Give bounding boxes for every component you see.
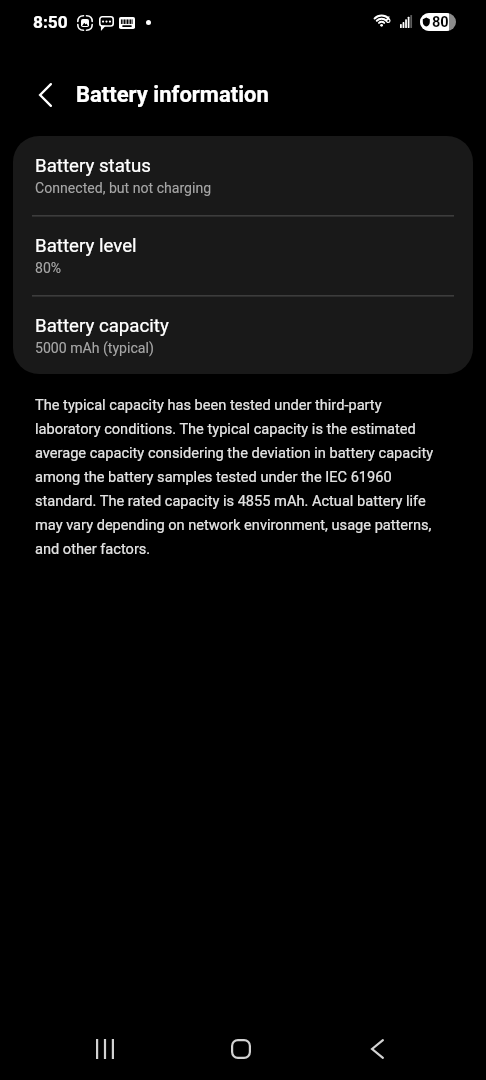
button[interactable]: Back [341,1018,413,1080]
staticText: Battery status [35,155,151,177]
button[interactable]: Battery level [13,216,473,296]
button[interactable]: Home [205,1018,277,1080]
staticText: Connected, but not charging [35,180,212,197]
button[interactable]: Recent apps [69,1018,141,1080]
staticText: Battery capacity [35,315,169,337]
button[interactable]: Battery status [13,136,473,216]
staticText: 8:50 [33,12,68,32]
staticText: Battery information [76,82,269,108]
staticText: The typical capacity has been tested und… [35,391,450,559]
staticText: 80% [35,260,62,277]
staticText: 5000 mAh (typical) [35,340,154,357]
staticText: 80 [432,13,449,30]
staticText: Battery level [35,235,137,257]
button[interactable]: Navigate up [23,73,67,117]
button[interactable]: Battery capacity [13,296,473,374]
